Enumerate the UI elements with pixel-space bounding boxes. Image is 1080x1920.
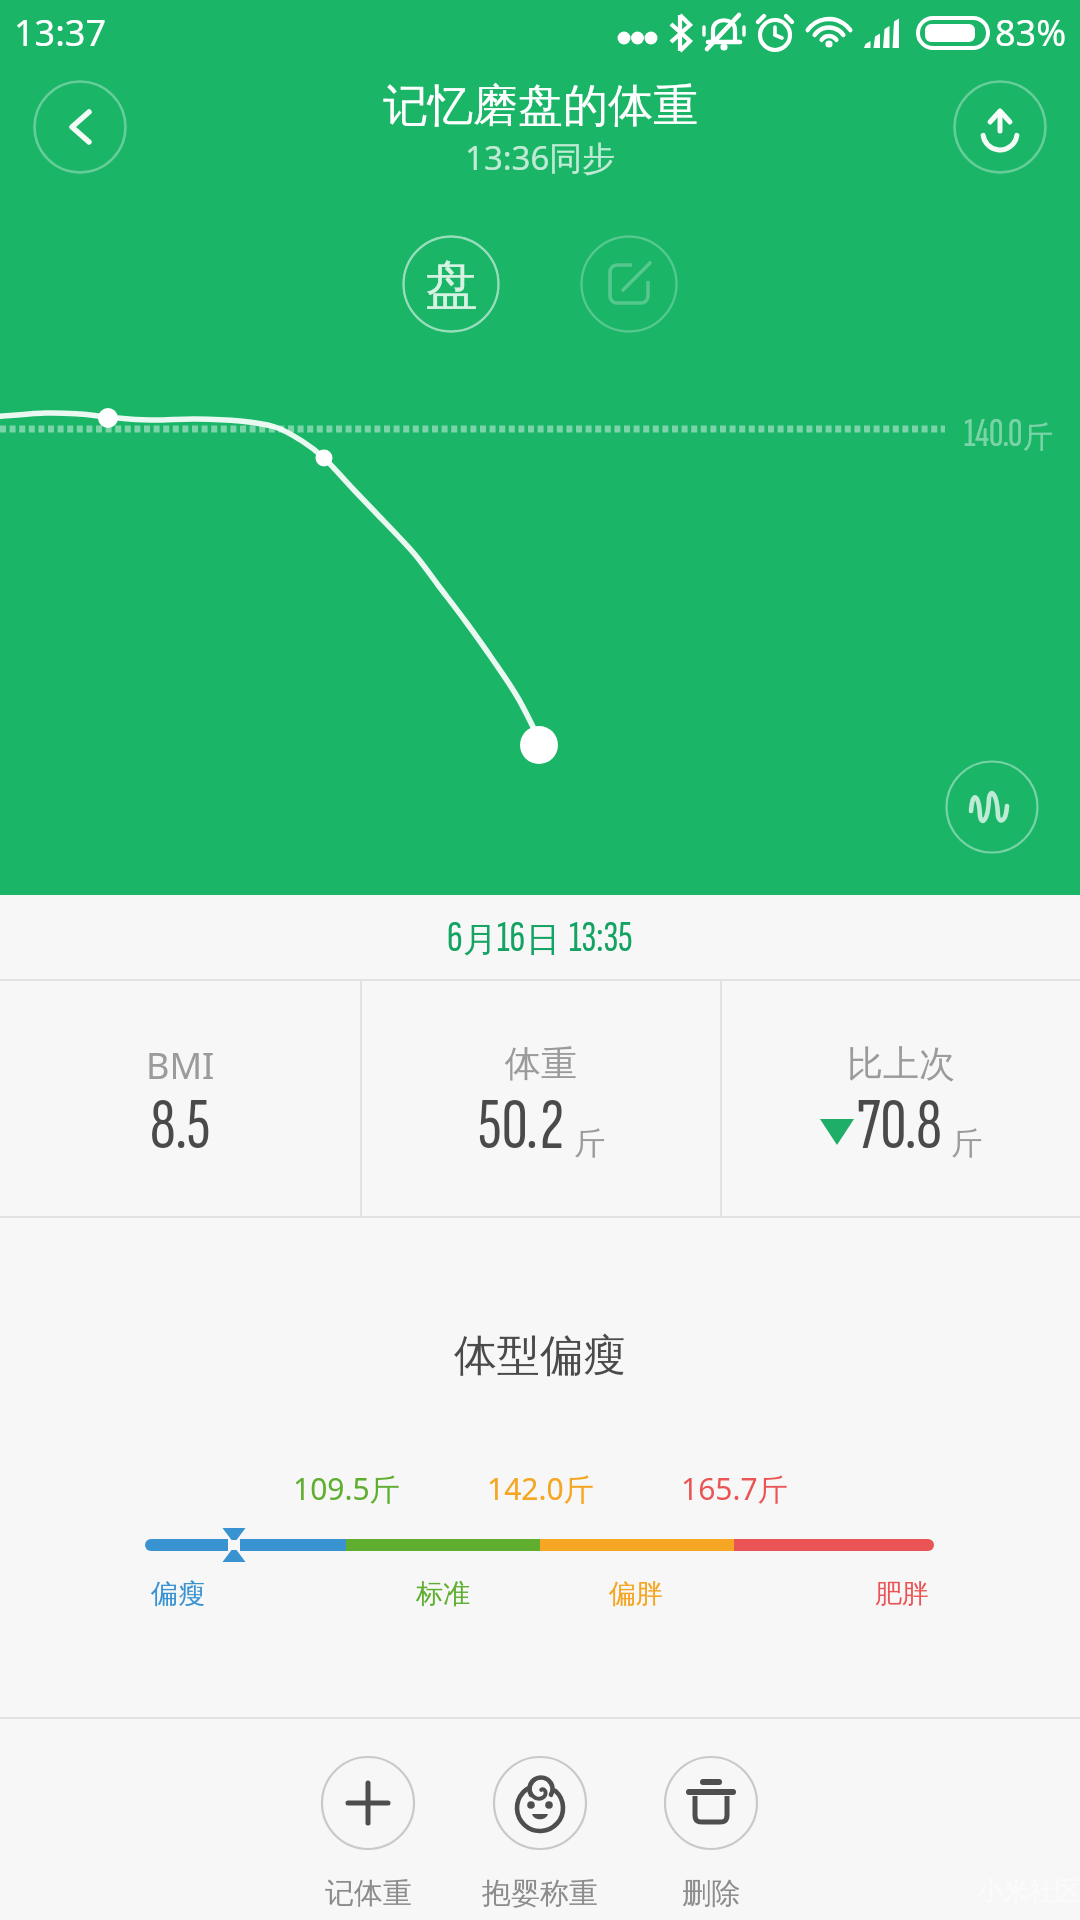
staticText: 记忆磨盘的体重 [383, 78, 698, 135]
button[interactable]: Edit [580, 235, 678, 333]
button[interactable]: 体重 [362, 981, 720, 1216]
button[interactable]: BMI [0, 981, 360, 1216]
button[interactable]: Share [953, 80, 1047, 174]
staticText: 140.0 [964, 410, 1023, 458]
button[interactable]: 记体重 [278, 1719, 458, 1920]
button[interactable]: 盘 [402, 235, 500, 333]
button[interactable]: Body data [945, 760, 1039, 854]
staticText: 13:36同步 [465, 135, 616, 180]
staticText: 斤 [951, 1124, 982, 1163]
staticText: 8.5 [150, 1082, 211, 1170]
staticText: 13:37 [14, 8, 107, 57]
button[interactable]: 比上次 [722, 981, 1080, 1216]
button[interactable]: 删除 [621, 1719, 801, 1920]
staticText: 70.8 [857, 1082, 942, 1170]
staticText: 偏瘦 [151, 1577, 205, 1611]
staticText: 肥胖 [875, 1577, 929, 1611]
staticText: 删除 [682, 1875, 740, 1912]
staticText: 偏胖 [609, 1577, 663, 1611]
staticText: 记体重 [325, 1875, 412, 1912]
staticText: 日 [526, 918, 560, 961]
staticText: 体型偏瘦 [454, 1329, 626, 1383]
staticText: 13:35 [569, 911, 633, 964]
staticText: 标准 [416, 1577, 470, 1611]
staticText: 142.0斤 [487, 1468, 594, 1509]
staticText: BMI [146, 1041, 215, 1090]
staticText: 165.7斤 [681, 1468, 788, 1509]
button[interactable]: Back [33, 80, 127, 174]
staticText: 16 [497, 911, 526, 964]
staticText: 斤 [574, 1124, 605, 1163]
staticText: 斤 [1023, 418, 1053, 456]
staticText: 体重 [505, 1041, 577, 1086]
staticText: 抱婴称重 [482, 1875, 598, 1912]
button[interactable]: 抱婴称重 [450, 1719, 630, 1920]
staticText: 月 [463, 918, 497, 961]
staticText: 6 [447, 911, 463, 964]
staticText: 50.2 [478, 1082, 565, 1170]
staticText: 109.5斤 [293, 1468, 400, 1509]
staticText: 比上次 [847, 1041, 955, 1086]
staticText: 盘 [425, 252, 478, 319]
staticText: 83% [995, 8, 1067, 57]
